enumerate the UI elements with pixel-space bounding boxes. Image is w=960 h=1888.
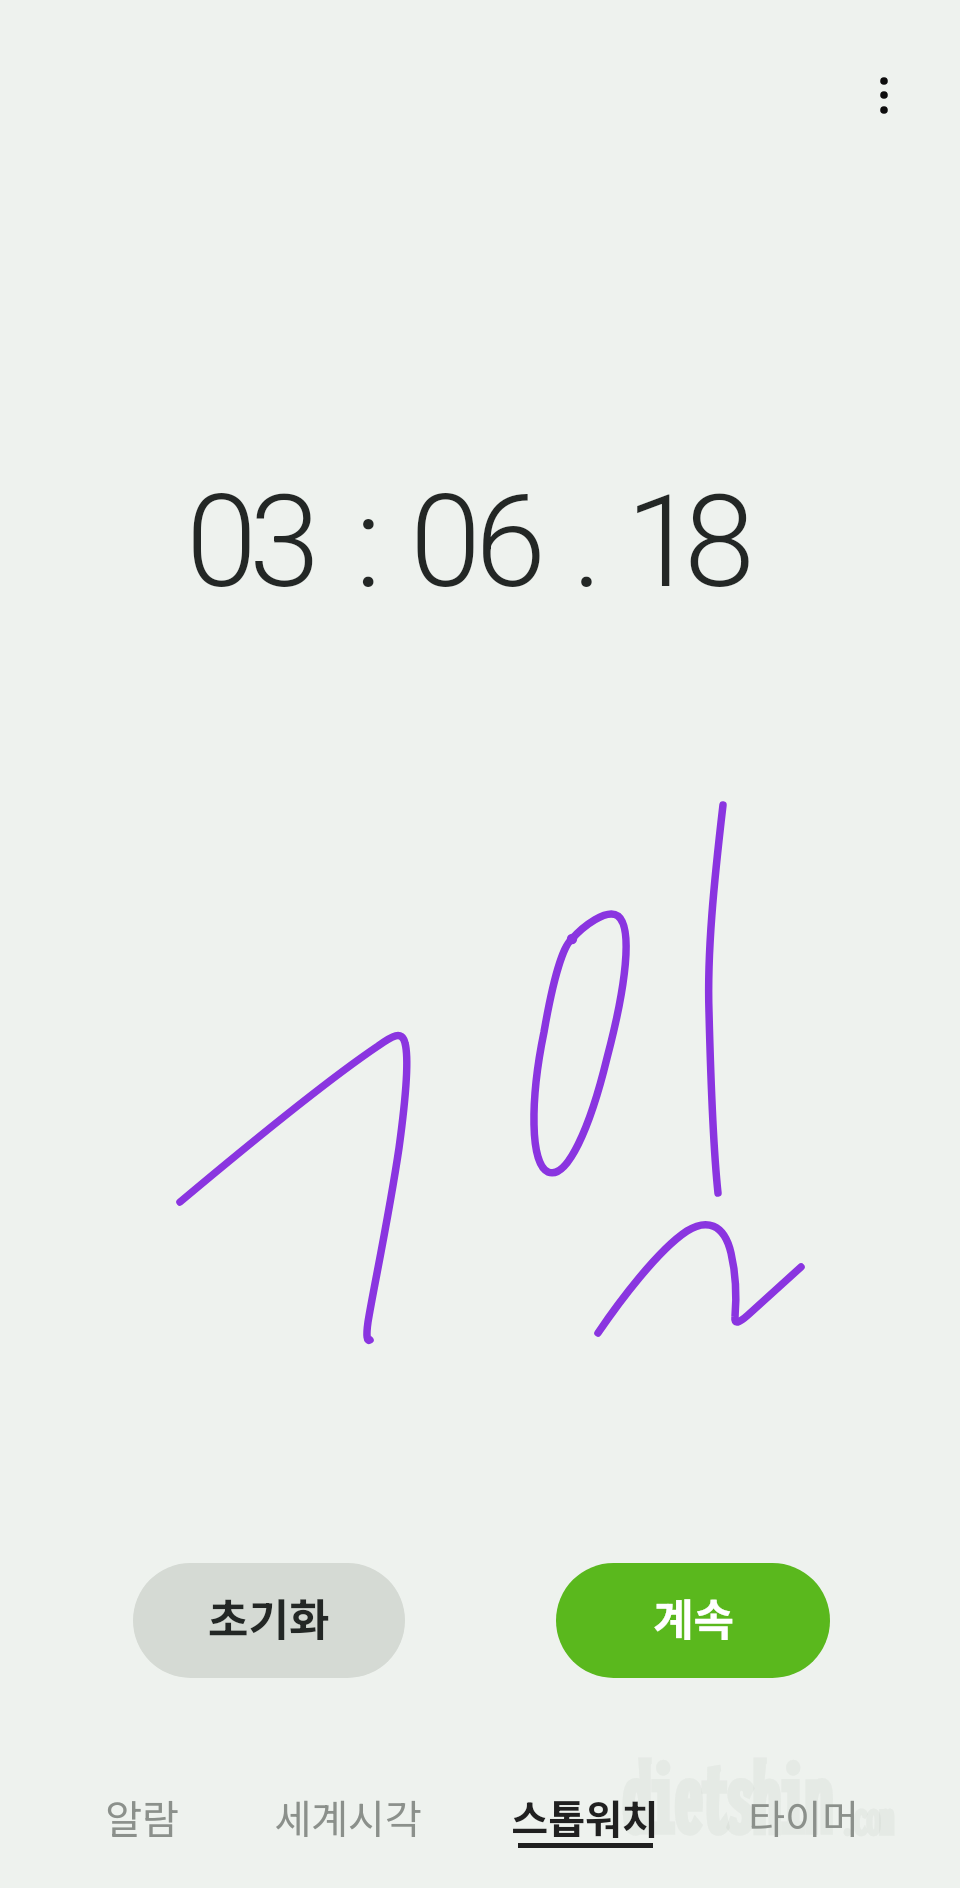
- button[interactable]: 스톱워치: [482, 1760, 688, 1888]
- staticText: 8: [684, 467, 755, 617]
- staticText: :: [355, 467, 382, 617]
- staticText: 0: [186, 467, 257, 617]
- staticText: .: [572, 467, 603, 617]
- button[interactable]: 초기화: [133, 1563, 405, 1678]
- staticText: 3: [249, 467, 320, 617]
- staticText: 세계시각: [274, 1788, 422, 1846]
- staticText: dietshin: [622, 1744, 831, 1853]
- staticText: 6: [475, 467, 546, 617]
- staticText: 알람: [105, 1788, 179, 1846]
- button[interactable]: 알람: [39, 1760, 245, 1888]
- staticText: 초기화: [208, 1585, 330, 1649]
- button[interactable]: 세계시각: [245, 1760, 451, 1888]
- staticText: 타이머: [748, 1788, 859, 1846]
- staticText: 스톱워치: [511, 1788, 659, 1846]
- button[interactable]: 계속: [556, 1563, 830, 1678]
- staticText: 계속: [653, 1585, 734, 1649]
- staticText: 0: [410, 467, 481, 617]
- button[interactable]: More options: [836, 47, 932, 143]
- button[interactable]: 타이머: [700, 1760, 906, 1888]
- staticText: .com: [840, 1790, 893, 1845]
- staticText: 1: [626, 467, 697, 617]
